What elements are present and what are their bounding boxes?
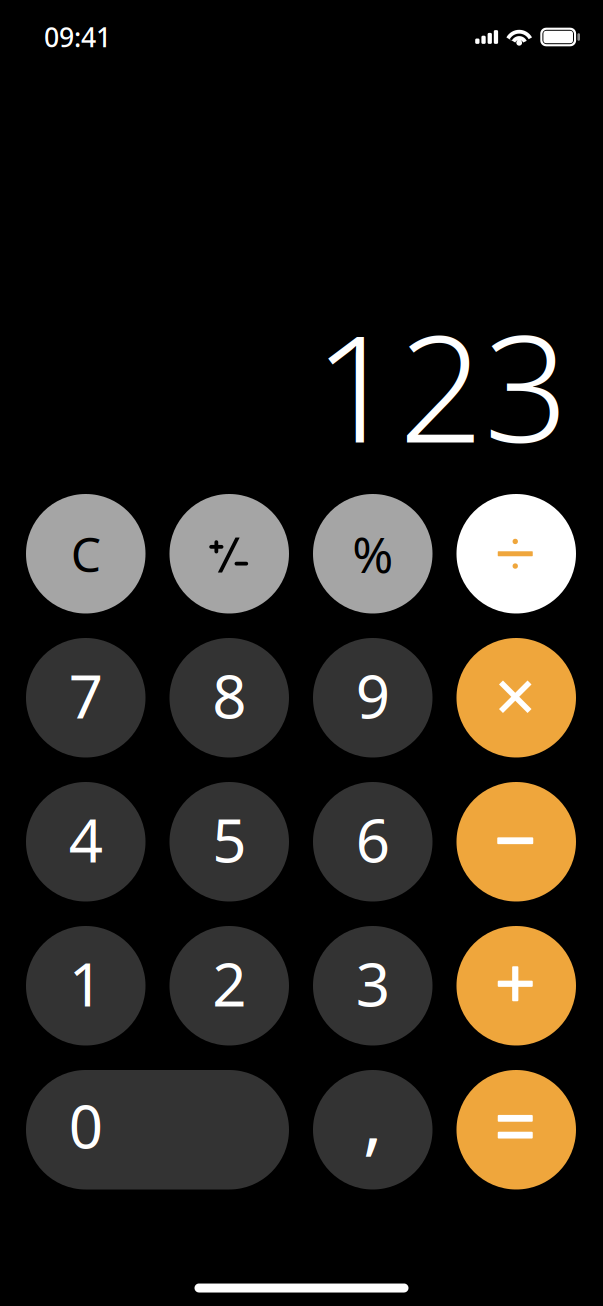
button[interactable]: 8 bbox=[169, 638, 289, 757]
staticText: 0 bbox=[69, 1085, 103, 1165]
button[interactable]: 0 bbox=[26, 1070, 289, 1189]
button[interactable]: 9 bbox=[313, 638, 432, 757]
staticText: 1 bbox=[69, 943, 103, 1023]
button[interactable]: Percent bbox=[313, 494, 432, 613]
staticText: 7 bbox=[69, 655, 103, 735]
button[interactable]: Add bbox=[456, 926, 576, 1045]
button[interactable]: Subtract bbox=[456, 782, 576, 901]
staticText: 6 bbox=[356, 799, 390, 879]
button[interactable]: Decimal separator bbox=[313, 1070, 432, 1189]
button[interactable]: 1 bbox=[26, 926, 145, 1045]
button[interactable]: 3 bbox=[313, 926, 432, 1045]
staticText: 5 bbox=[212, 799, 246, 879]
staticText: 3 bbox=[356, 943, 390, 1023]
button[interactable]: 5 bbox=[169, 782, 289, 901]
button[interactable]: 2 bbox=[169, 926, 289, 1045]
button[interactable]: Multiply bbox=[456, 638, 576, 757]
staticText: 8 bbox=[212, 655, 246, 735]
staticText: 9 bbox=[356, 655, 390, 735]
staticText: % bbox=[352, 521, 393, 586]
button[interactable]: 7 bbox=[26, 638, 145, 757]
staticText: 4 bbox=[69, 799, 103, 879]
button[interactable]: Equals bbox=[456, 1070, 576, 1189]
button[interactable]: 4 bbox=[26, 782, 145, 901]
button[interactable]: Clear bbox=[26, 494, 145, 613]
staticText: 09:41 bbox=[44, 19, 111, 55]
staticText: , bbox=[363, 1068, 383, 1167]
staticText: 123 bbox=[314, 287, 569, 483]
staticText: 2 bbox=[212, 943, 246, 1023]
staticText: C bbox=[71, 522, 101, 586]
button[interactable]: 6 bbox=[313, 782, 432, 901]
button[interactable]: Plus minus bbox=[169, 494, 289, 613]
button[interactable]: Divide bbox=[456, 494, 576, 613]
